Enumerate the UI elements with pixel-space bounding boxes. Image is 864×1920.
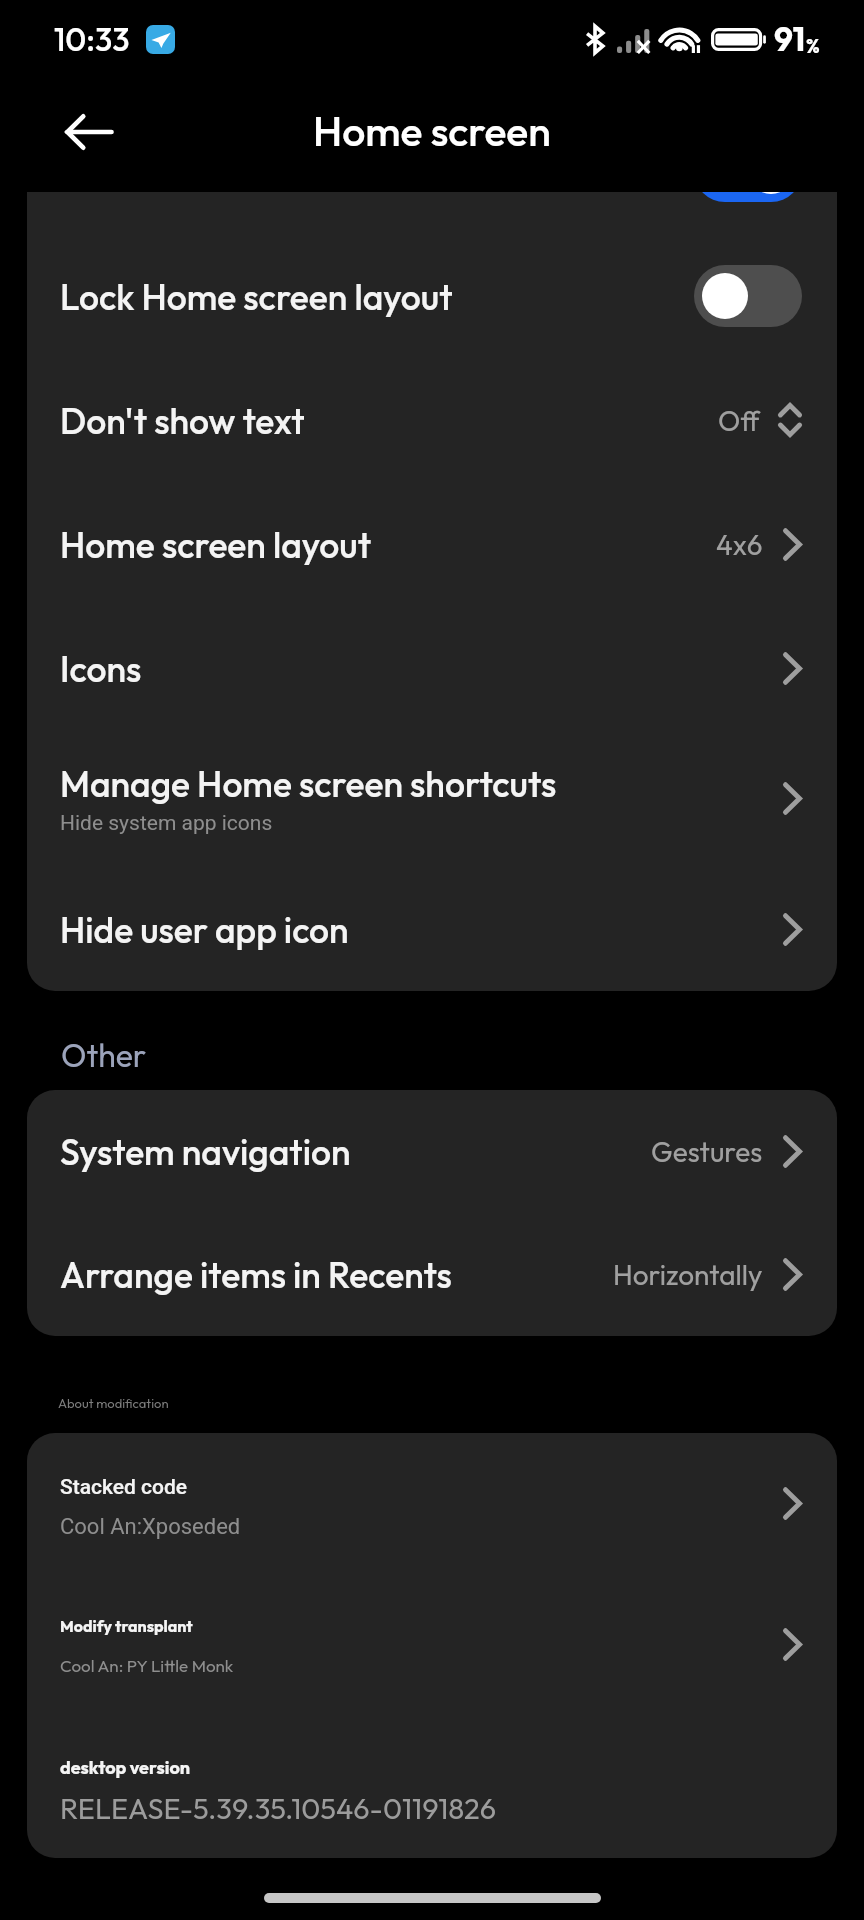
staticText: Don't show text — [60, 398, 305, 443]
button[interactable]: Icons — [27, 606, 837, 730]
staticText: Modify transplant — [60, 1616, 193, 1636]
staticText: Home screen — [313, 105, 551, 157]
staticText: Arrange items in Recents — [60, 1252, 452, 1297]
button[interactable]: Lock Home screen layout — [27, 234, 837, 358]
staticText: Cool An:Xposeded — [60, 1514, 241, 1540]
staticText: 10:33 — [54, 19, 130, 59]
staticText: 4x6 — [716, 527, 763, 562]
button[interactable]: Back — [52, 95, 126, 169]
button[interactable]: Manage Home screen shortcuts — [27, 730, 837, 867]
staticText: Home screen layout — [60, 522, 372, 567]
staticText: 91 — [774, 18, 806, 60]
staticText: Hide system app icons — [60, 811, 273, 836]
staticText: System navigation — [60, 1129, 351, 1174]
button[interactable]: Arrange items in Recents — [27, 1213, 837, 1336]
button[interactable]: Hide user app icon — [27, 867, 837, 991]
staticText: Lock Home screen layout — [60, 274, 453, 319]
button[interactable]: Stacked code — [27, 1433, 837, 1574]
staticText: Gestures — [651, 1134, 763, 1169]
staticText: Off — [718, 403, 760, 438]
staticText: About modification — [58, 1395, 169, 1411]
button[interactable]: Lock Home screen layout — [694, 265, 802, 327]
staticText: Icons — [60, 646, 142, 691]
button[interactable]: Home screen layout — [27, 482, 837, 606]
button[interactable]: Don't show text — [27, 358, 837, 482]
staticText: RELEASE-5.39.35.10546-01191826 — [60, 1790, 497, 1827]
staticText: Hide user app icon — [60, 907, 349, 952]
button[interactable]: System navigation — [27, 1090, 837, 1213]
button[interactable]: desktop version — [27, 1715, 837, 1858]
staticText: desktop version — [60, 1756, 191, 1779]
staticText: Other — [61, 1035, 147, 1075]
staticText: Stacked code — [60, 1475, 187, 1500]
staticText: Horizontally — [613, 1257, 763, 1292]
staticText: Cool An: PY Little Monk — [60, 1655, 234, 1676]
staticText: % — [806, 33, 820, 58]
staticText: Manage Home screen shortcuts — [60, 761, 557, 806]
button[interactable]: Modify transplant — [27, 1574, 837, 1715]
